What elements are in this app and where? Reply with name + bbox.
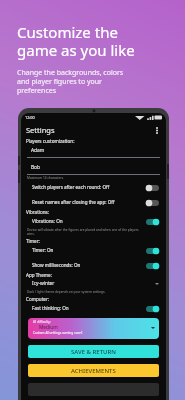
staticText: Players customization: [26,138,75,144]
button[interactable]: Show milliseconds: On [25,259,162,271]
button[interactable]: Switch off [146,183,159,192]
staticText: Maximum 14 characters. [27,176,64,180]
button[interactable]: Icy-winter [25,278,162,289]
button[interactable]: Vibrations: On [25,215,162,227]
staticText: Switch players after each round: Off [32,184,110,190]
staticText: Device will vibrate after the figures ar… [27,228,139,236]
button[interactable]: Bob [25,164,162,175]
staticText: SAVE & RETURN [71,348,116,356]
staticText: Change the backgrounds, colors and playe… [17,68,124,95]
button[interactable]: AI difficulty: [28,318,159,339]
button[interactable]: Switch on [146,304,159,313]
staticText: Icy-winter [32,280,55,287]
staticText: AI difficulty: [33,320,51,324]
staticText: Adam [31,147,45,154]
button[interactable]: Reset names after closing the app: Off [25,196,162,208]
button[interactable]: SAVE & RETURN [28,345,159,358]
staticText: Show milliseconds: On [32,262,81,268]
staticText: Reset names after closing the app: Off [32,199,115,205]
staticText: Bob [31,164,40,171]
staticText: Fast thinking: On [32,305,69,311]
staticText: ACHIEVEMENTS [71,367,116,375]
staticText: Custom AI settings coming soon! [33,331,83,335]
staticText: Settings [26,125,55,135]
staticText: Vibrations: On [32,218,63,224]
staticText: Vibrations: [26,209,50,215]
button[interactable]: More options [152,126,161,135]
button[interactable]: Switch players after each round: Off [25,181,162,193]
staticText: Dark / light theme depends on your syste… [27,290,106,294]
button[interactable]: Adam [25,147,162,158]
staticText: Medium [39,324,58,331]
staticText: 12:00 [25,115,35,120]
staticText: Computer: [26,296,50,302]
button[interactable]: Switch on [146,246,159,255]
staticText: Customize the game as you like [17,22,135,61]
button[interactable]: Fast thinking: On [25,302,162,314]
button[interactable]: Timer: On [25,244,162,256]
staticText: Timer: [26,238,40,244]
button[interactable]: Switch on [146,217,159,226]
staticText: App Theme: [26,272,52,278]
staticText: Timer: On [32,247,54,253]
button[interactable]: Switch off [146,198,159,207]
button[interactable]: Switch on [146,261,159,270]
button[interactable]: ACHIEVEMENTS [28,364,159,377]
